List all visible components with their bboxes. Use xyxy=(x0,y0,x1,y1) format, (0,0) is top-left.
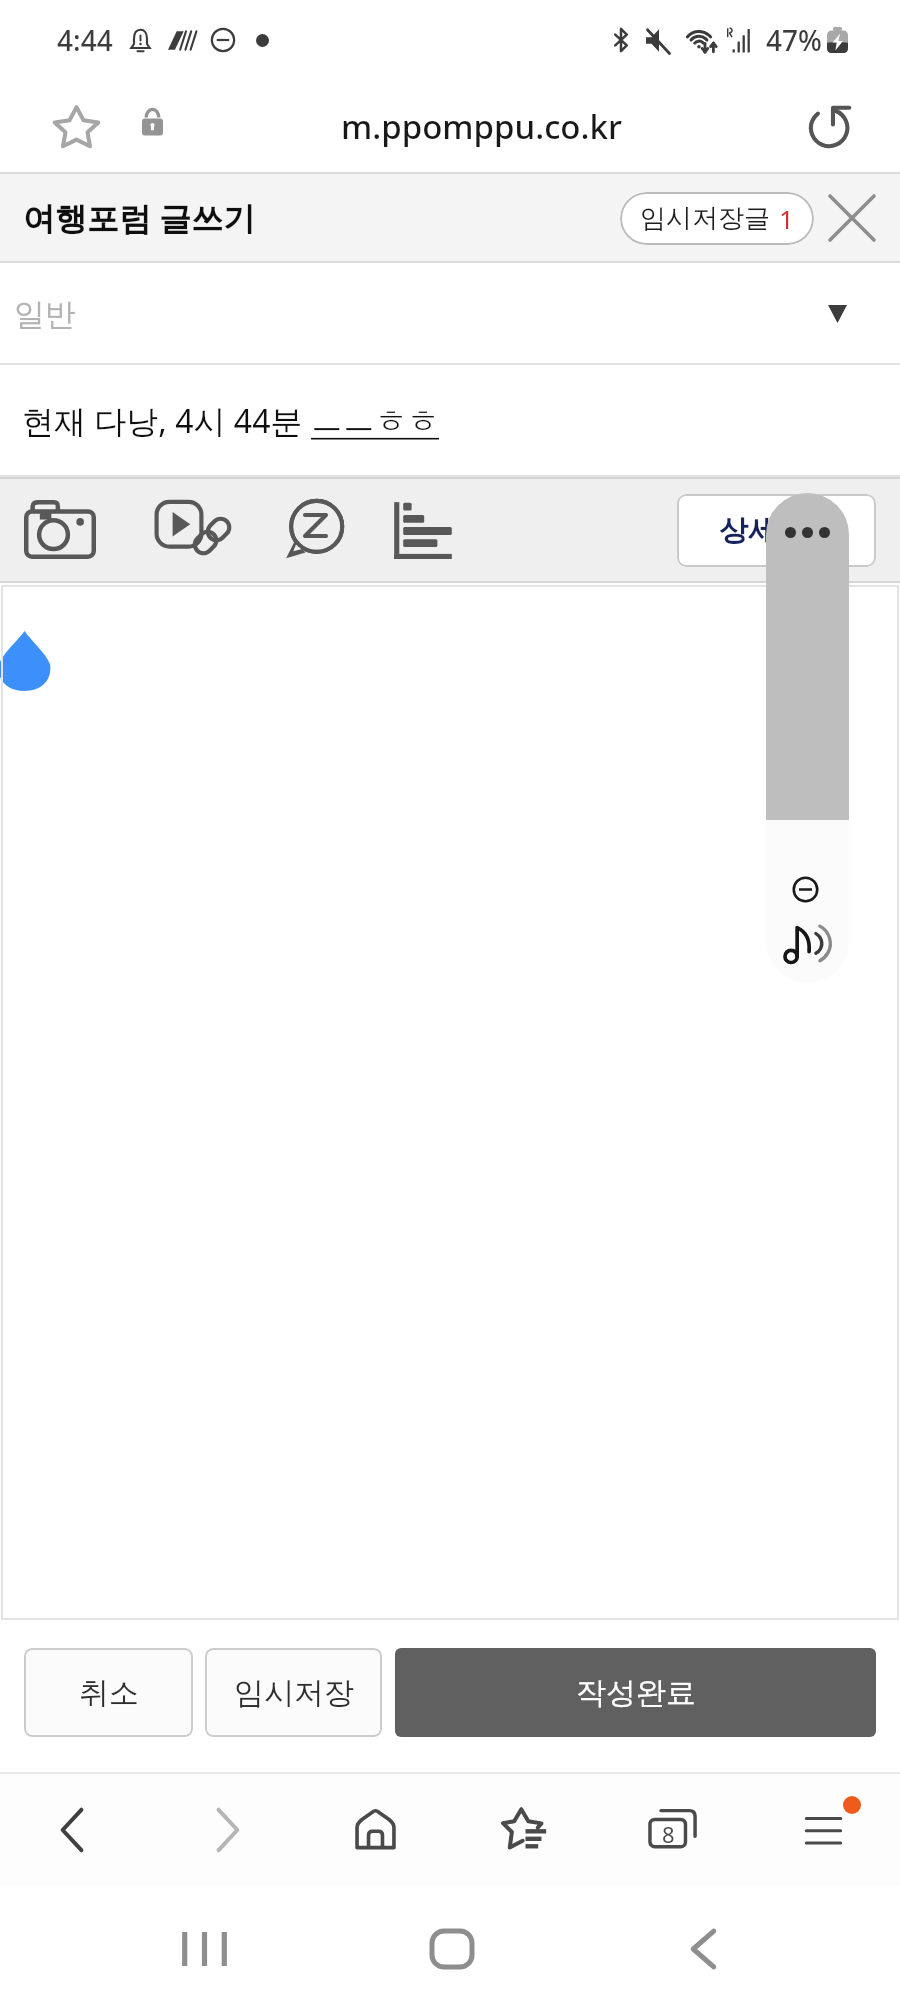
button[interactable]: Add bookmark xyxy=(40,90,112,162)
staticText: 1 xyxy=(779,201,794,236)
button[interactable]: 임시저장 xyxy=(205,1648,382,1737)
staticText: 작성완료 xyxy=(576,1674,696,1712)
staticText: 현재 다낭, 4시 44분 xyxy=(22,399,311,443)
button[interactable]: Close editor xyxy=(814,180,890,256)
staticText: 8 xyxy=(662,1819,675,1849)
button[interactable]: Insert poll xyxy=(383,490,463,570)
staticText: 취소 xyxy=(79,1674,139,1712)
button[interactable]: 현재 다낭, 4시 44분 xyxy=(0,365,900,477)
button[interactable]: 취소 xyxy=(24,1648,193,1737)
staticText: 임시저장글 xyxy=(640,202,770,235)
button[interactable]: Edge panel handle xyxy=(766,493,849,820)
staticText: 상세설정 xyxy=(719,512,835,549)
button[interactable]: Tabs xyxy=(628,1782,718,1878)
button[interactable]: 일반 xyxy=(0,263,900,365)
button[interactable]: Site security info xyxy=(124,93,180,149)
staticText: 일반 xyxy=(14,295,76,334)
button[interactable]: Insert photo xyxy=(20,490,100,570)
button[interactable]: Insert video link xyxy=(155,490,235,570)
button[interactable]: Bookmarks xyxy=(480,1782,570,1878)
staticText: 임시저장 xyxy=(234,1674,354,1712)
button[interactable]: 임시저장글 xyxy=(620,192,814,245)
button[interactable]: 상세설정 xyxy=(677,494,876,567)
staticText: ㅡㅡㅎㅎ xyxy=(311,401,439,441)
button[interactable]: 작성완료 xyxy=(395,1648,876,1737)
staticText: m.ppomppu.co.kr xyxy=(341,104,622,149)
button[interactable]: Back xyxy=(658,1904,748,1994)
staticText: 47% xyxy=(766,21,822,59)
button[interactable]: Back xyxy=(27,1782,117,1878)
button[interactable]: Home xyxy=(407,1904,497,1994)
button[interactable] xyxy=(1,585,899,1620)
staticText: 여행포럼 글쓰기 xyxy=(23,196,256,240)
button[interactable]: Reload page xyxy=(796,90,868,162)
staticText: 4:44 xyxy=(57,21,113,59)
button[interactable]: Insert sticker xyxy=(274,490,354,570)
button[interactable]: Home xyxy=(330,1782,420,1878)
button[interactable]: Recent apps xyxy=(159,1904,249,1994)
button[interactable]: Forward xyxy=(183,1782,273,1878)
button[interactable]: Assistive menu xyxy=(766,700,849,983)
button[interactable]: Menu xyxy=(778,1782,868,1878)
